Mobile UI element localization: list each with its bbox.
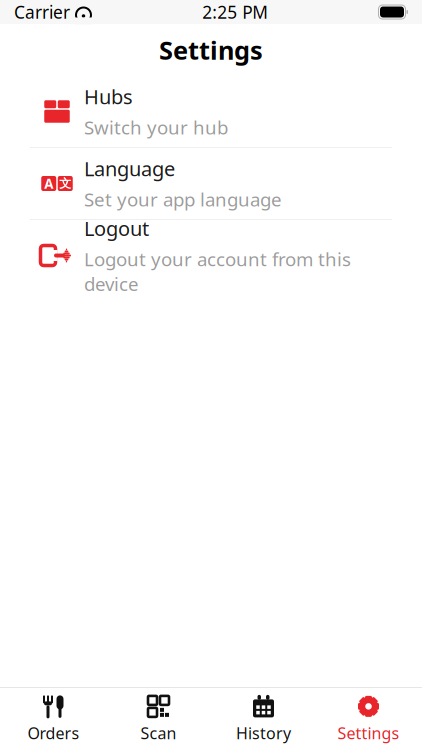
staticText: A [44, 175, 53, 192]
staticText: Carrier [14, 0, 70, 23]
staticText: Set your app language [84, 187, 282, 212]
staticText: History [236, 722, 291, 744]
staticText: Switch your hub [84, 115, 228, 140]
button[interactable]: History [211, 688, 316, 750]
staticText: Orders [27, 722, 79, 744]
button[interactable]: Orders [1, 688, 106, 750]
staticText: 2:25 PM [202, 0, 268, 23]
staticText: Settings [159, 33, 263, 67]
staticText: Language [84, 155, 175, 182]
staticText: 文 [59, 176, 71, 191]
button[interactable]: Logout [0, 220, 422, 291]
staticText: Settings [337, 722, 399, 744]
button[interactable]: Hubs [0, 76, 422, 148]
staticText: Scan [140, 722, 176, 744]
button[interactable]: Settings [316, 688, 421, 750]
button[interactable]: Scan [106, 688, 211, 750]
staticText: Logout [84, 215, 149, 241]
button[interactable]: A [0, 148, 422, 220]
staticText: Hubs [84, 83, 133, 110]
staticText: Logout your account from this device [84, 246, 351, 296]
